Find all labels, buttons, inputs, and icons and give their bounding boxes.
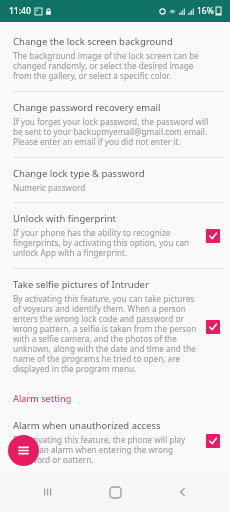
- staticText: Take selfie pictures of Intruder: [13, 278, 149, 291]
- staticText: Change the lock screen background: [13, 35, 173, 48]
- button[interactable]: Change the lock screen background: [0, 26, 230, 91]
- button[interactable]: Toggle option: [206, 434, 220, 448]
- staticText: 16%: [197, 5, 214, 17]
- button[interactable]: Unlock with fingerprint: [0, 203, 230, 268]
- staticText: Change password recovery email: [13, 101, 161, 114]
- button[interactable]: Toggle option: [206, 320, 220, 334]
- button[interactable]: Menu: [8, 435, 39, 466]
- staticText: If you forget your lock password, the pa…: [13, 116, 212, 148]
- staticText: The background image of the lock screen …: [13, 50, 212, 82]
- button[interactable]: Change password recovery email: [0, 92, 230, 157]
- staticText: Alarm setting: [13, 392, 72, 404]
- staticText: 11:40: [9, 5, 31, 17]
- button[interactable]: Toggle option: [206, 229, 220, 243]
- staticText: If your phone has the ability to recogni…: [13, 227, 198, 259]
- button[interactable]: Change lock type & password: [0, 158, 230, 202]
- staticText: By activating this feature, you can take…: [13, 293, 198, 375]
- button[interactable]: Back: [163, 472, 203, 512]
- button[interactable]: Recents: [28, 472, 68, 512]
- button[interactable]: Home: [95, 472, 135, 512]
- staticText: Change lock type & password: [13, 167, 145, 180]
- staticText: By activating this feature, the phone wi…: [13, 434, 198, 463]
- button[interactable]: Take selfie pictures of Intruder: [0, 269, 230, 384]
- staticText: Unlock with fingerprint: [13, 212, 117, 225]
- button[interactable]: Alarm when unauthorized access: [0, 410, 230, 472]
- staticText: Alarm when unauthorized access: [13, 419, 161, 432]
- staticText: Numeric password: [13, 182, 86, 193]
